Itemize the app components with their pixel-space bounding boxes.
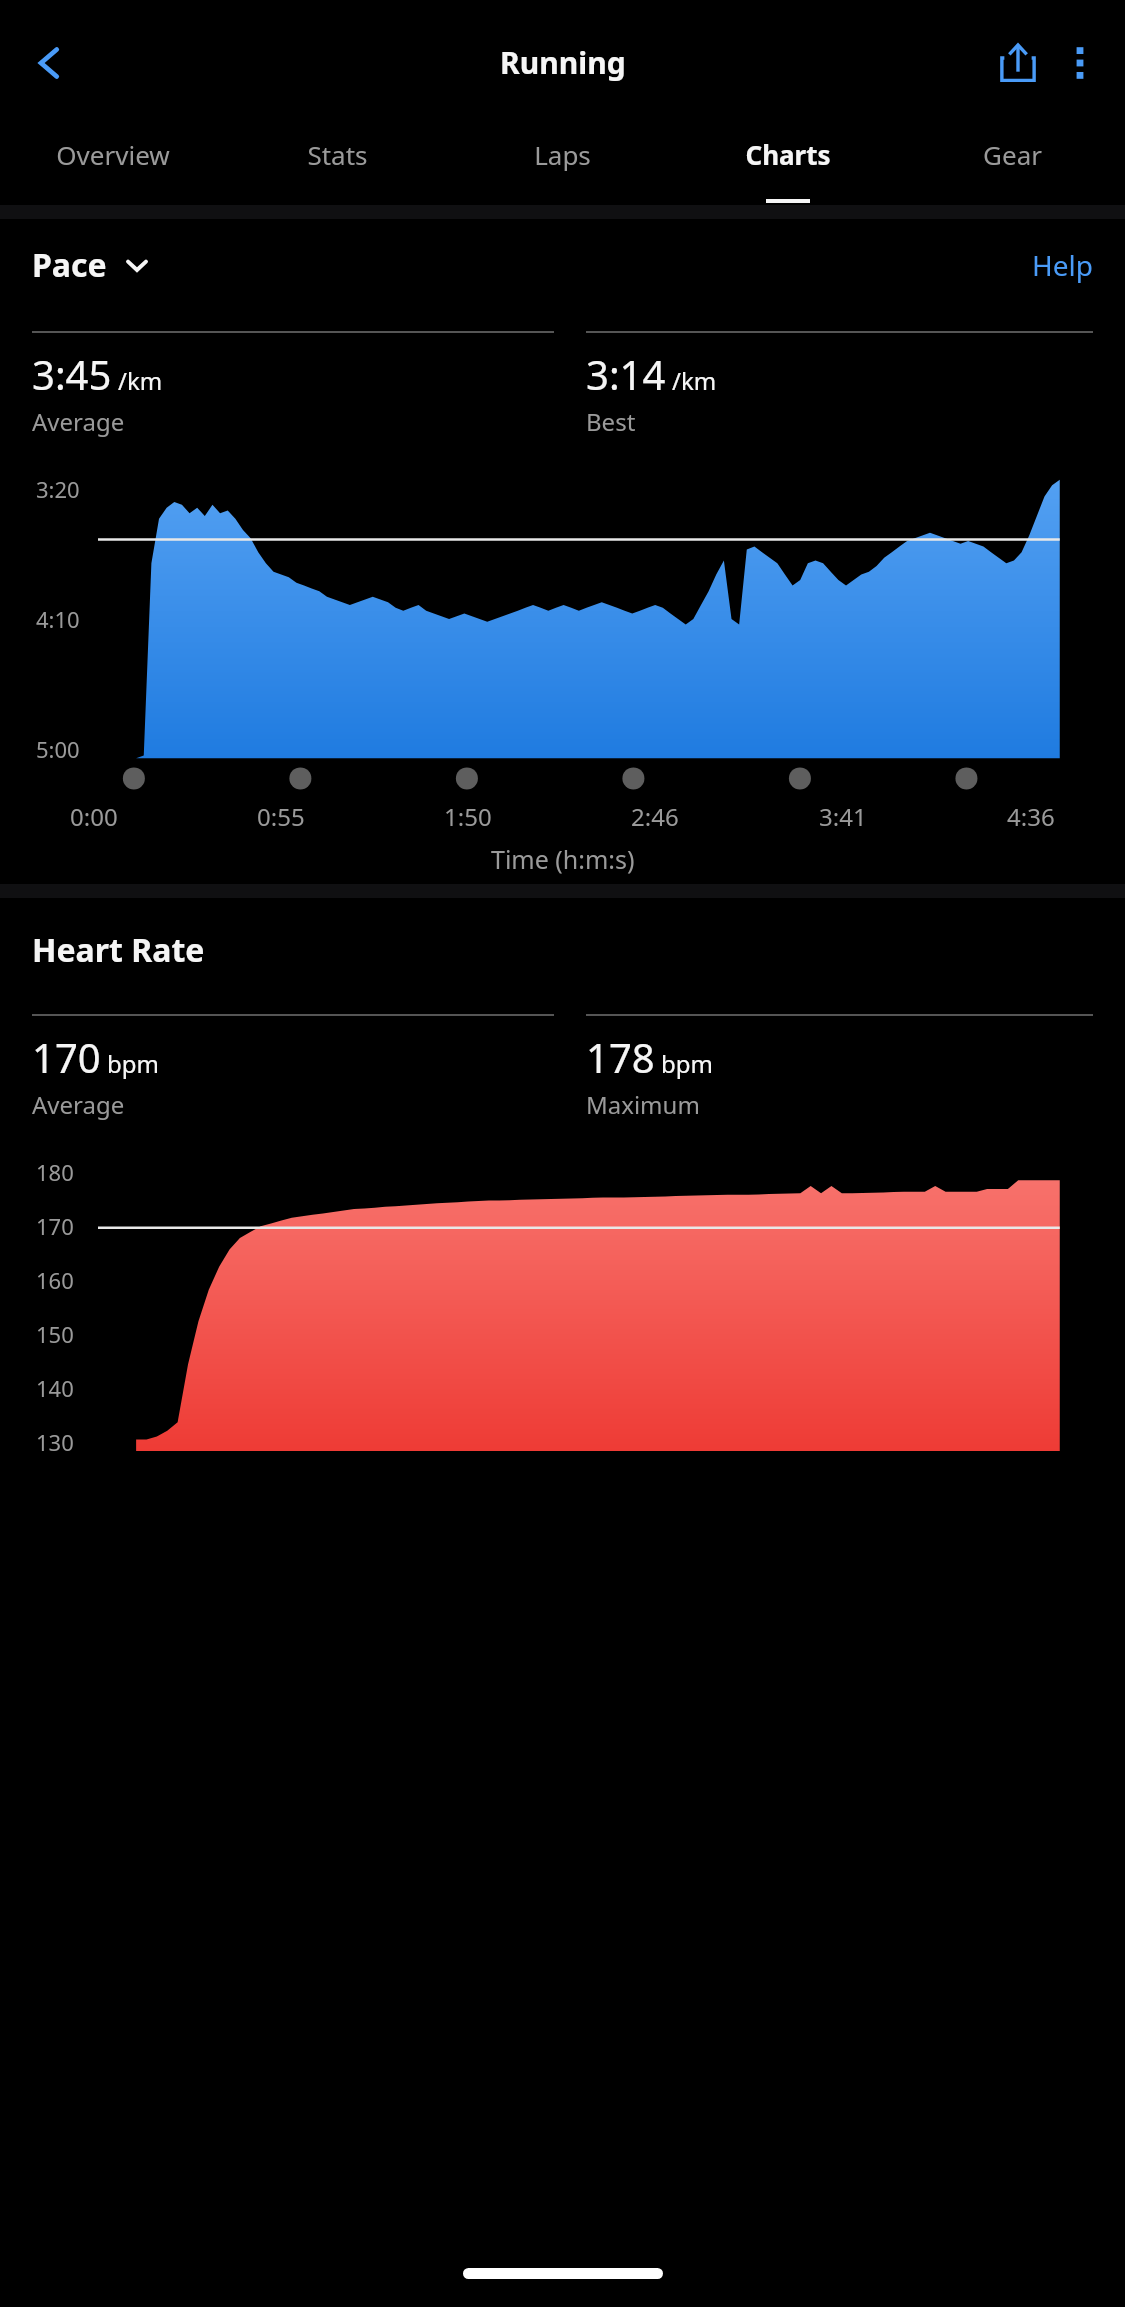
staticText: bpm	[107, 1047, 159, 1080]
staticText: Average	[32, 405, 125, 438]
button[interactable]: Help	[1032, 246, 1093, 284]
staticText: /km	[118, 364, 163, 397]
staticText: 130	[36, 1427, 74, 1457]
staticText: 180	[36, 1157, 74, 1187]
staticText: 150	[36, 1319, 74, 1349]
staticText: 160	[36, 1265, 74, 1295]
staticText: 1:50	[444, 800, 492, 833]
staticText: Heart Rate	[32, 928, 205, 972]
staticText: 3:20	[36, 474, 80, 504]
staticText: 0:00	[70, 800, 118, 833]
staticText: /km	[672, 364, 717, 397]
staticText: Gear	[983, 137, 1042, 172]
staticText: 4:10	[36, 604, 80, 634]
staticText: Average	[32, 1088, 125, 1121]
staticText: Charts	[745, 137, 831, 172]
button[interactable]: Overview	[0, 125, 225, 205]
staticText: Running	[500, 42, 626, 83]
staticText: 0:55	[257, 800, 305, 833]
button[interactable]: Laps	[450, 125, 675, 205]
button[interactable]: Stats	[225, 125, 450, 205]
staticText: 170	[36, 1211, 74, 1241]
staticText: Pace	[32, 243, 107, 287]
staticText: 5:00	[36, 734, 80, 764]
staticText: Overview	[56, 137, 170, 172]
staticText: Time (h:m:s)	[491, 842, 635, 876]
staticText: 2:46	[631, 800, 679, 833]
staticText: 3:45	[32, 347, 112, 401]
staticText: bpm	[661, 1047, 713, 1080]
button[interactable]: Share	[987, 32, 1049, 94]
staticText: 178	[586, 1030, 655, 1084]
staticText: 3:41	[819, 800, 867, 833]
button[interactable]: Back	[22, 35, 78, 91]
staticText: 3:14	[586, 347, 666, 401]
button[interactable]: Pace	[32, 243, 151, 287]
staticText: 4:36	[1007, 800, 1055, 833]
staticText: Laps	[534, 137, 591, 172]
staticText: 170	[32, 1030, 101, 1084]
staticText: Best	[586, 405, 636, 438]
staticText: Maximum	[586, 1088, 700, 1121]
button[interactable]: More options	[1049, 32, 1111, 94]
staticText: Stats	[307, 137, 368, 172]
button[interactable]: Charts	[675, 125, 900, 205]
button[interactable]: Gear	[900, 125, 1125, 205]
staticText: 140	[36, 1373, 74, 1403]
